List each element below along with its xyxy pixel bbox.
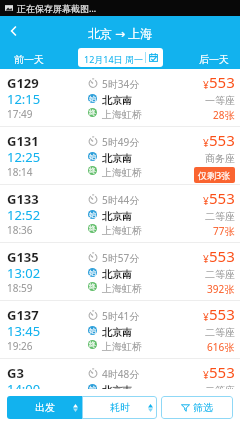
staticText: 始 [89,384,96,393]
staticText: 12:15 [7,90,41,108]
staticText: 北京南 [102,268,132,281]
staticText: 上海虹桥 [102,108,142,121]
staticText: 始 [89,152,96,161]
staticText: G129 [7,74,39,92]
staticText: 553 [209,188,235,208]
staticText: 4时48分 [102,367,140,381]
staticText: 18:59 [7,281,33,295]
staticText: 5时34分 [102,77,140,91]
button[interactable]: G135 [0,243,240,301]
staticText: 616张 [207,340,235,354]
staticText: 5时57分 [102,251,140,265]
staticText: 18:48 [7,397,33,411]
staticText: 553 [209,130,235,150]
staticText: 出发 [35,401,55,414]
staticText: 二等座 [205,384,235,397]
staticText: 553 [209,362,235,382]
staticText: ¥ [203,252,209,266]
staticText: 终 [89,340,96,349]
button[interactable]: 前一天 [8,48,50,71]
staticText: 上海虹桥 [102,398,142,411]
staticText: 二等座 [205,268,235,281]
staticText: 28张 [213,108,235,122]
staticText: G133 [7,190,39,208]
staticText: ¥ [203,78,209,92]
staticText: 上海虹桥 [102,224,142,237]
staticText: 13:02 [7,264,41,282]
staticText: G131 [7,132,39,150]
staticText: 上海虹桥 [102,166,142,179]
staticText: 12月14日 周一 [84,53,143,65]
staticText: 12:25 [7,148,41,166]
staticText: 终 [89,108,96,117]
staticText: ¥ [203,310,209,324]
staticText: 北京南 [102,384,132,397]
staticText: 553 [209,72,235,92]
staticText: ¥ [203,194,209,208]
staticText: 18:14 [7,165,33,179]
staticText: 553 [209,246,235,266]
staticText: 392张 [207,282,235,296]
staticText: 5时44分 [102,193,140,207]
staticText: 5时41分 [102,309,140,323]
staticText: ¥ [203,136,209,150]
staticText: 17:49 [7,107,33,121]
staticText: ¥ [203,368,209,382]
staticText: 一等座 [205,94,235,107]
staticText: 后一天 [199,53,229,66]
staticText: 5时49分 [102,135,140,149]
staticText: 100张 [207,398,235,412]
staticText: 北京南 [102,326,132,339]
staticText: 上海虹桥 [102,340,142,353]
staticText: 13:45 [7,322,41,340]
button[interactable]: G137 [0,301,240,359]
staticText: 77张 [213,224,235,238]
staticText: 仅剩3张 [198,169,231,181]
button[interactable]: 出发 [7,396,82,419]
staticText: 北京南 [102,152,132,165]
staticText: 始 [89,210,96,219]
staticText: 北京南 [102,94,132,107]
button[interactable]: 12月14日 周一 [78,48,163,67]
staticText: 始 [89,268,96,277]
button[interactable]: G129 [0,69,240,127]
button[interactable]: G131 [0,127,240,185]
staticText: 终 [89,224,96,233]
staticText: 上海虹桥 [102,282,142,295]
staticText: 筛选 [193,401,213,414]
staticText: 终 [89,282,96,291]
button[interactable]: 后一天 [193,48,235,71]
staticText: 始 [89,94,96,103]
staticText: 耗时 [110,401,130,414]
staticText: 商务座 [205,152,235,165]
button[interactable]: G133 [0,185,240,243]
staticText: G137 [7,306,39,324]
staticText: 北京南 [102,210,132,223]
button[interactable]: 筛选 [161,396,233,419]
staticText: G135 [7,248,39,266]
staticText: 二等座 [205,210,235,223]
staticText: G3 [7,364,24,382]
staticText: 终 [89,166,96,175]
staticText: 19:26 [7,339,33,353]
staticText: 二等座 [205,326,235,339]
staticText: 553 [209,304,235,324]
staticText: 前一天 [14,53,44,66]
button[interactable]: 耗时 [82,396,157,419]
staticText: 北京 → 上海 [88,25,153,41]
button[interactable]: G3 [0,359,240,417]
button[interactable]: Back [0,16,28,46]
staticText: 12:52 [7,206,41,224]
staticText: 始 [89,326,96,335]
staticText: 正在保存屏幕截图… [17,2,97,14]
staticText: 18:36 [7,223,33,237]
staticText: 14:00 [7,380,41,398]
